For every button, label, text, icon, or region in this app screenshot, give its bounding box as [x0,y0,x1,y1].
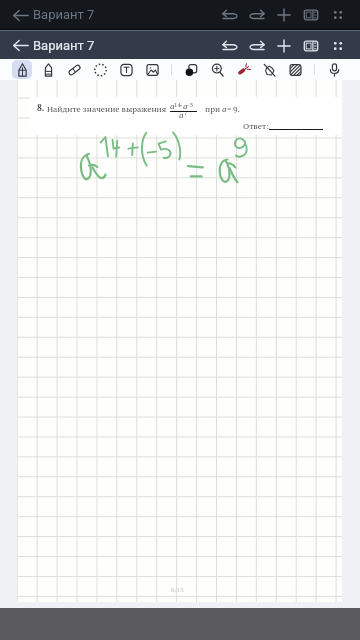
button[interactable]: Page layout [297,32,324,59]
button[interactable]: Back [8,33,32,57]
button[interactable]: Lasso select [87,59,113,80]
staticText: -5 [187,100,194,108]
button[interactable]: Eraser [61,59,87,80]
button[interactable]: Laser pointer [230,59,256,80]
button[interactable]: Text box [113,59,139,80]
staticText: 8/13 [171,585,184,594]
staticText: Вариант 7 [33,38,95,53]
staticText: 8. [37,102,45,113]
button[interactable]: Add page [270,1,297,28]
button[interactable]: Zoom [204,59,230,80]
staticText: 9. [233,103,240,114]
button[interactable]: Colour [178,59,204,80]
button[interactable]: Redo [243,32,270,59]
button[interactable]: Shading [282,59,308,80]
staticText: 7 [184,108,188,116]
button[interactable]: Undo [216,32,243,59]
staticText: Вариант 7 [33,7,95,22]
staticText: 14 [174,100,181,108]
staticText: a [183,100,188,111]
staticText: · [180,99,183,110]
staticText: Найдите значение выражения [47,103,167,114]
staticText: = [227,103,232,114]
button[interactable]: Fountain pen [9,59,35,80]
button[interactable]: Redo [243,1,270,28]
button[interactable]: More options [324,1,351,28]
staticText: a [179,109,184,120]
button[interactable]: Voice note [321,59,347,80]
staticText: a [170,100,175,111]
staticText: a [222,103,227,114]
staticText: Ответ: [243,120,269,131]
button[interactable]: Page layout [297,1,324,28]
button[interactable]: More options [324,32,351,59]
staticText: при [205,103,221,114]
button[interactable]: Marker pen [35,59,61,80]
button[interactable]: Palm rejection [256,59,282,80]
button[interactable]: Undo [216,1,243,28]
button[interactable]: Insert image [139,59,165,80]
button[interactable]: Add page [270,32,297,59]
button[interactable]: Back [8,3,32,27]
